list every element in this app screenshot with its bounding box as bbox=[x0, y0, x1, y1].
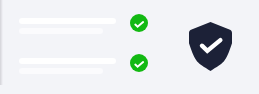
other: Protected bbox=[189, 22, 232, 71]
button[interactable] bbox=[0, 40, 259, 80]
button[interactable] bbox=[0, 0, 259, 40]
